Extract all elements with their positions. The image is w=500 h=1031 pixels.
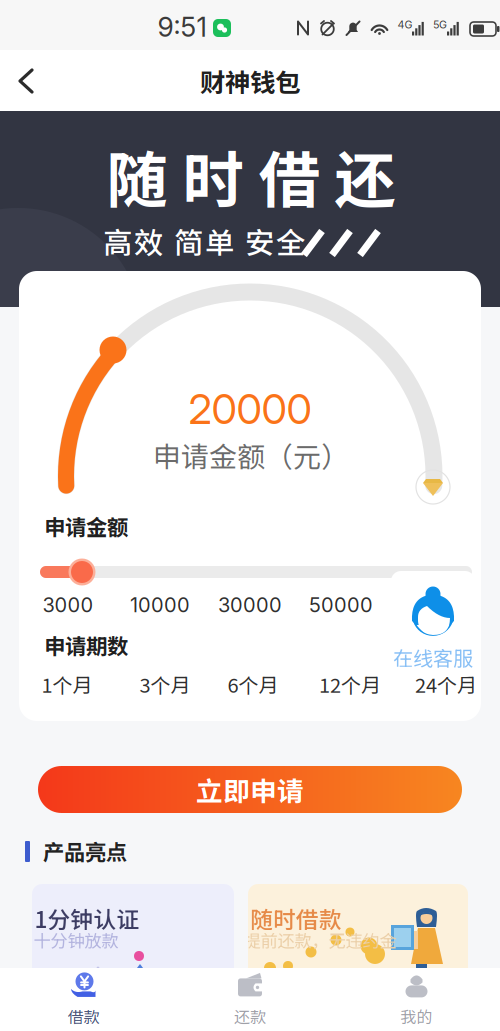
staticText: 30000 bbox=[218, 593, 282, 617]
staticText: 十分钟放款 bbox=[33, 927, 118, 953]
staticText: 申请期数 bbox=[44, 630, 128, 660]
button[interactable]: Back bbox=[5, 59, 49, 103]
button[interactable]: 在线客服 bbox=[391, 571, 475, 677]
staticText: 20000 bbox=[188, 384, 311, 434]
staticText: 随时借还 bbox=[106, 132, 395, 220]
button[interactable]: 1分钟认证 bbox=[32, 884, 234, 999]
staticText: 4G bbox=[397, 18, 412, 31]
button[interactable]: 我的 bbox=[333, 968, 500, 1031]
staticText: 随时借款 bbox=[250, 902, 342, 934]
staticText: 申请金额 bbox=[44, 511, 128, 541]
button[interactable]: 还款 bbox=[167, 968, 333, 1031]
staticText: 立即申请 bbox=[196, 770, 304, 809]
staticText: 12个月 bbox=[319, 669, 381, 698]
staticText: 9:51 bbox=[157, 11, 206, 43]
staticText: 50000 bbox=[309, 593, 373, 617]
staticText: 在线客服 bbox=[393, 642, 473, 671]
staticText: 借款 bbox=[67, 1004, 99, 1028]
staticText: 6个月 bbox=[227, 669, 278, 698]
staticText: 1个月 bbox=[41, 669, 92, 698]
staticText: 24个月 bbox=[415, 669, 477, 698]
staticText: 还款 bbox=[234, 1004, 266, 1028]
staticText: 申请金额（元） bbox=[153, 435, 349, 475]
staticText: 5G bbox=[433, 18, 447, 31]
staticText: 10000 bbox=[130, 593, 190, 617]
button[interactable]: 随时借款 bbox=[248, 884, 468, 999]
staticText: 3000 bbox=[42, 593, 93, 617]
staticText: 3个月 bbox=[139, 669, 190, 698]
button[interactable]: 借款 bbox=[0, 968, 167, 1031]
staticText: 我的 bbox=[400, 1004, 432, 1028]
staticText: 高效 简单 安全 bbox=[103, 220, 305, 262]
button[interactable]: 立即申请 bbox=[38, 766, 462, 813]
staticText: 财神钱包 bbox=[200, 63, 300, 99]
staticText: 产品亮点 bbox=[43, 836, 127, 866]
staticText: 1分钟认证 bbox=[34, 902, 139, 934]
staticText: 提前还款，无违约金 bbox=[243, 927, 396, 953]
